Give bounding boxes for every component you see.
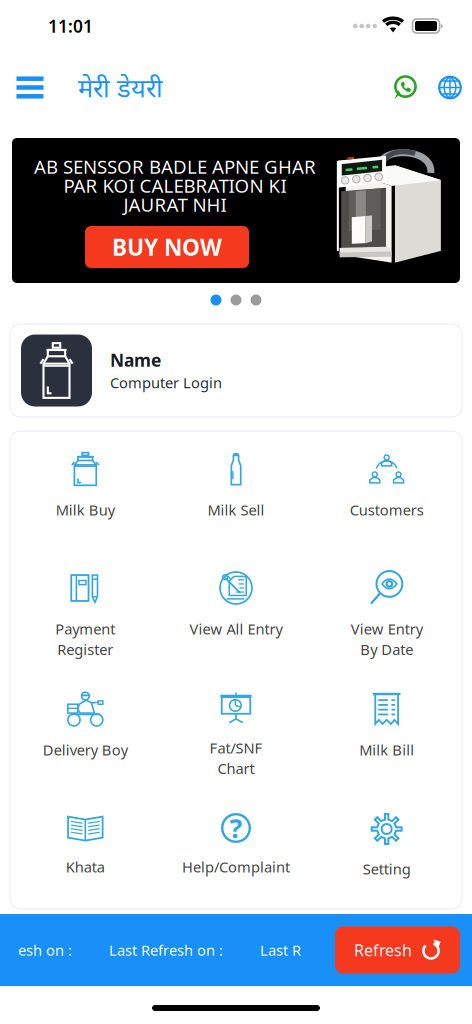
staticText: JAURAT NHI (123, 192, 226, 217)
button[interactable]: Setting (311, 809, 462, 904)
button[interactable]: BUY NOW (85, 226, 249, 268)
staticText: Customers (350, 500, 424, 519)
staticText: मेरी डेयरी (78, 71, 163, 104)
button[interactable]: View Entry (311, 567, 462, 688)
staticText: Register (57, 639, 113, 659)
staticText: Refresh (354, 939, 412, 961)
staticText: Computer Login (110, 373, 222, 392)
button[interactable]: Change language (430, 65, 470, 109)
staticText: Setting (363, 859, 411, 878)
staticText: BUY NOW (112, 232, 222, 262)
staticText: Khata (66, 857, 105, 876)
staticText: Last R (260, 940, 301, 960)
staticText: Help/Complaint (182, 857, 290, 876)
button[interactable]: Milk Bill (311, 688, 462, 809)
staticText: View All Entry (189, 619, 282, 638)
button[interactable]: WhatsApp (385, 65, 425, 109)
staticText: Last Refresh on : (109, 940, 223, 960)
staticText: Chart (217, 758, 254, 778)
staticText: 11:01 (48, 14, 93, 37)
button[interactable]: View All Entry (161, 567, 311, 688)
staticText: PAR KOI CALEBRATION KI (63, 173, 286, 198)
staticText: Milk Sell (207, 500, 264, 519)
button[interactable]: Refresh (335, 926, 460, 974)
staticText: Fat/SNF (209, 738, 262, 757)
staticText: Milk Buy (56, 500, 115, 519)
staticText: Delivery Boy (43, 740, 128, 759)
staticText: Payment (55, 619, 115, 638)
button[interactable]: Delivery Boy (10, 688, 161, 809)
button[interactable]: Khata (10, 809, 161, 904)
button[interactable]: Menu (8, 64, 52, 110)
staticText: Milk Bill (359, 740, 414, 759)
button[interactable]: Payment (10, 567, 161, 688)
button[interactable]: Milk Sell (161, 448, 311, 567)
staticText: ? (229, 810, 242, 846)
button[interactable]: Milk Buy (10, 448, 161, 567)
button[interactable]: Fat/SNF (161, 688, 311, 809)
staticText: AB SENSSOR BADLE APNE GHAR (34, 154, 316, 179)
staticText: esh on : (18, 940, 72, 960)
staticText: Name (110, 348, 161, 371)
button[interactable]: Customers (311, 448, 462, 567)
staticText: View Entry (351, 619, 423, 638)
button[interactable]: ? (161, 809, 311, 904)
staticText: By Date (360, 639, 413, 659)
